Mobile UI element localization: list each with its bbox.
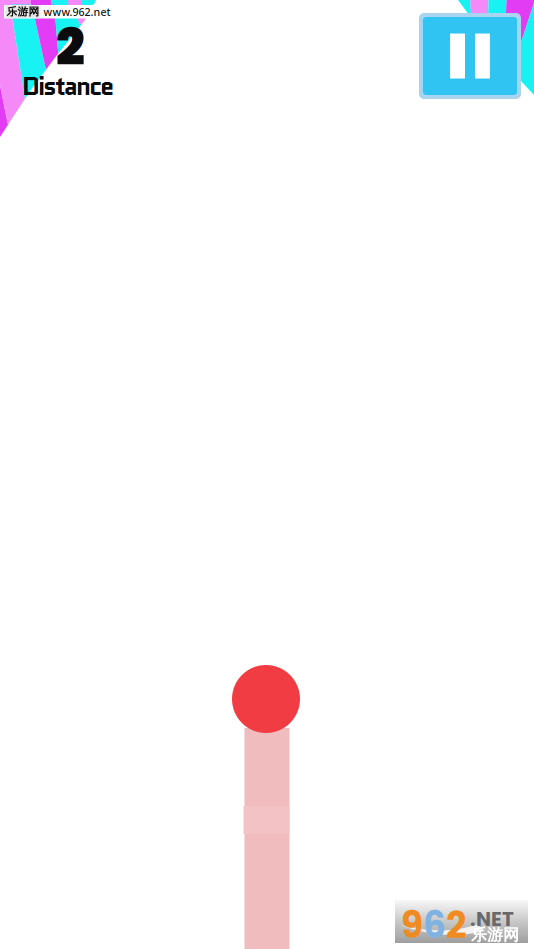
staticText: Distance bbox=[22, 68, 114, 104]
staticText: www.962.net bbox=[43, 5, 110, 19]
staticText: 2 bbox=[56, 12, 85, 83]
staticText: 6 bbox=[423, 900, 446, 949]
staticText: 乐游网 bbox=[6, 5, 39, 18]
staticText: 9 bbox=[401, 900, 423, 949]
staticText: 2 bbox=[446, 900, 467, 949]
staticText: 乐游网 bbox=[471, 925, 519, 945]
button[interactable]: Pause bbox=[419, 13, 521, 99]
staticText: .NET bbox=[470, 905, 514, 933]
